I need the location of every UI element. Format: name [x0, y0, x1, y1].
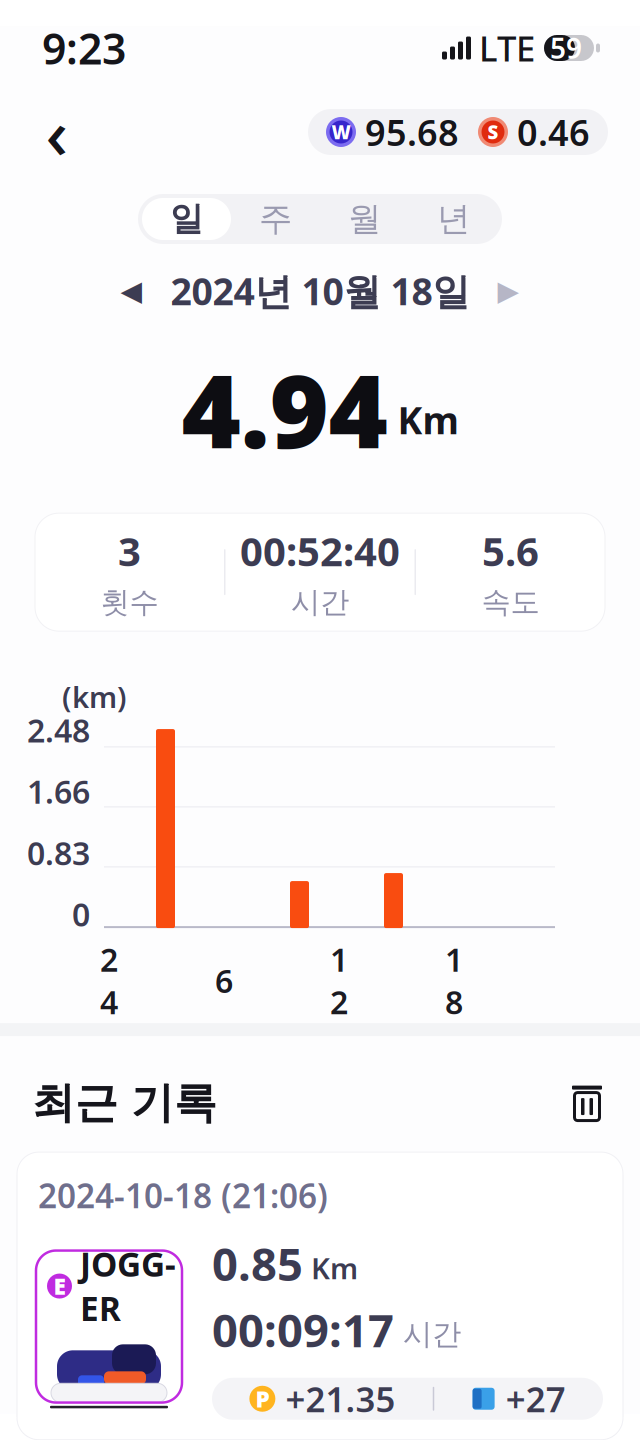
staticText: 0 [72, 893, 90, 935]
staticText: 2024-10-18 (21:06) [38, 1173, 328, 1217]
staticText: Km [311, 1248, 358, 1287]
staticText: 시간 [291, 584, 349, 620]
staticText: 9:23 [42, 20, 126, 76]
button[interactable]: Back [26, 101, 88, 163]
staticText: +27 [506, 1376, 566, 1422]
staticText: 95.68 [365, 108, 459, 156]
staticText: 0.85 [212, 1233, 303, 1294]
staticText: 4.94 [181, 342, 387, 476]
button[interactable]: 월 [320, 198, 409, 240]
staticText: ▶ [497, 275, 519, 307]
staticText: 횟수 [100, 584, 158, 620]
staticText: 주 [259, 198, 292, 239]
staticText: W [331, 120, 350, 144]
staticText: 1.66 [27, 770, 90, 813]
staticText: ‹ [45, 86, 68, 178]
staticText: 일 [170, 198, 203, 239]
staticText: 59 [550, 29, 582, 67]
staticText: 년 [437, 198, 470, 239]
staticText: P [255, 1384, 269, 1414]
staticText: ◀ [120, 275, 142, 307]
staticText: 00:52:40 [240, 524, 400, 577]
staticText: +21.35 [285, 1376, 395, 1422]
staticText: 24 [100, 938, 118, 1023]
staticText: 0.46 [517, 108, 590, 156]
button[interactable]: Previous day [108, 268, 154, 314]
button[interactable]: W [308, 109, 608, 155]
button[interactable]: 2024-10-18 (21:06) [0, 1152, 640, 1440]
staticText: 18 [445, 938, 463, 1023]
staticText: 2.48 [27, 709, 90, 751]
staticText: 월 [348, 198, 381, 239]
staticText: 00:09:17 [212, 1300, 394, 1360]
staticText: 시간 [403, 1316, 461, 1352]
staticText: 3 [118, 524, 141, 577]
button[interactable]: 년 [409, 198, 498, 240]
staticText: 최근 기록 [32, 1077, 217, 1129]
staticText: Km [397, 395, 458, 445]
staticText: (km) [62, 677, 127, 716]
staticText: 속도 [481, 584, 539, 620]
staticText: S [487, 120, 498, 144]
staticText: JOGGER [80, 1242, 176, 1330]
staticText: 2024년 10월 18일 [170, 266, 469, 316]
staticText: 5.6 [482, 524, 539, 577]
button[interactable]: 일 [142, 198, 231, 240]
button[interactable]: Next day [485, 268, 531, 314]
staticText: E [53, 1271, 65, 1301]
button[interactable]: 주 [231, 198, 320, 240]
staticText: 0.83 [27, 831, 90, 874]
staticText: 12 [330, 938, 348, 1023]
staticText: 6 [215, 959, 233, 1002]
staticText: LTE [479, 25, 535, 71]
button[interactable]: Delete records [560, 1076, 614, 1130]
